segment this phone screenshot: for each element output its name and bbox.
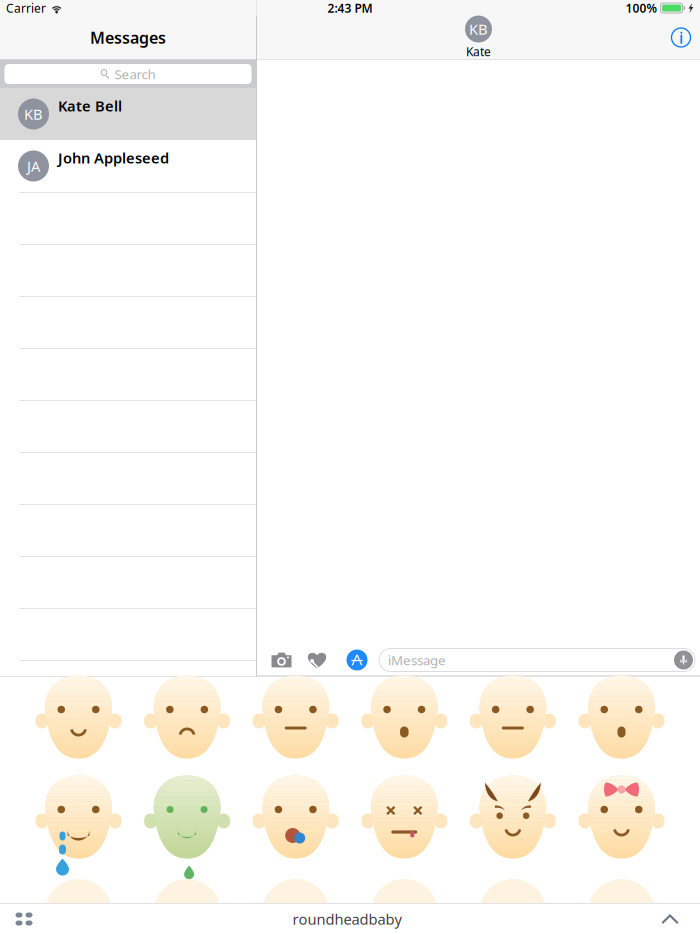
- staticText: i: [679, 27, 683, 48]
- staticText: Kate: [466, 43, 491, 59]
- button[interactable]: Sticker: [24, 679, 133, 779]
- button[interactable]: Sticker: [133, 679, 241, 779]
- staticText: 2:43 PM: [327, 0, 372, 16]
- button[interactable]: Search: [4, 64, 251, 84]
- staticText: KB: [24, 104, 43, 124]
- button[interactable]: Sticker: [350, 679, 459, 779]
- staticText: KB: [469, 19, 488, 39]
- button[interactable]: Sticker: [459, 779, 567, 879]
- button[interactable]: iMessage text field: [379, 648, 695, 671]
- button[interactable]: Expand: [648, 904, 692, 934]
- staticText: John Appleseed: [58, 148, 169, 167]
- button[interactable]: Kate: [465, 15, 492, 59]
- staticText: 100%: [626, 0, 658, 16]
- staticText: roundheadbaby: [292, 909, 401, 929]
- staticText: Kate Bell: [58, 96, 122, 115]
- button[interactable]: Apps: [335, 645, 379, 675]
- staticText: Search: [114, 65, 155, 83]
- button[interactable]: Sticker packs: [2, 904, 46, 934]
- button[interactable]: JA: [0, 140, 256, 192]
- button[interactable]: Sticker: [459, 679, 567, 779]
- staticText: JA: [27, 156, 40, 176]
- button[interactable]: Sticker: [241, 779, 350, 879]
- button[interactable]: Sticker: [567, 779, 676, 879]
- button[interactable]: Digital Touch: [299, 645, 335, 675]
- button[interactable]: Sticker: [567, 679, 676, 779]
- button[interactable]: Sticker: [350, 779, 459, 879]
- button[interactable]: Sticker: [24, 779, 133, 879]
- staticText: iMessage: [388, 651, 446, 669]
- button[interactable]: Details: [670, 26, 692, 48]
- button[interactable]: Sticker: [133, 779, 241, 879]
- button[interactable]: Camera: [264, 645, 299, 675]
- staticText: Carrier: [6, 0, 46, 16]
- button[interactable]: KB: [0, 88, 256, 140]
- button[interactable]: Sticker: [241, 679, 350, 779]
- staticText: Messages: [90, 27, 166, 48]
